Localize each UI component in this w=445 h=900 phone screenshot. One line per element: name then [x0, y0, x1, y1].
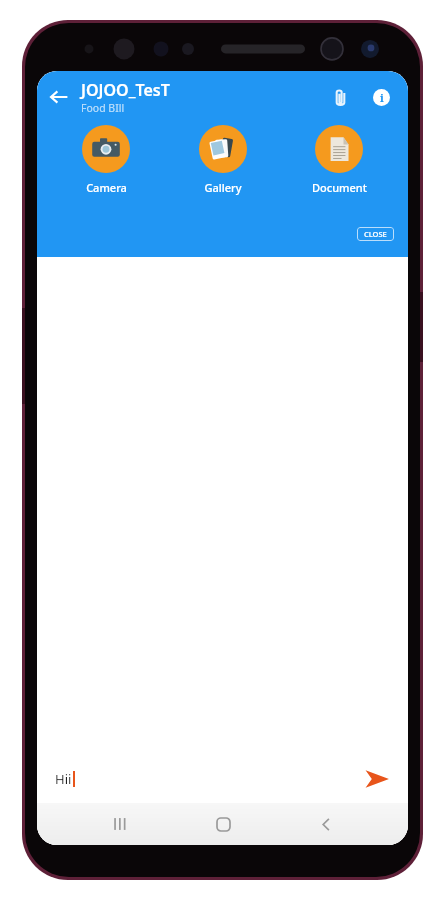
button[interactable]: Info — [360, 76, 402, 118]
staticText: Camera — [86, 180, 127, 195]
button[interactable]: Recent apps — [97, 803, 141, 845]
button[interactable]: Back — [304, 803, 348, 845]
button[interactable]: Document — [291, 123, 387, 195]
button[interactable]: CLOSE — [357, 227, 394, 241]
staticText: Food BIll — [81, 101, 125, 115]
button[interactable]: Gallery — [175, 123, 271, 195]
staticText: Gallery — [204, 180, 242, 195]
button[interactable]: Attach file — [320, 77, 360, 117]
button[interactable]: Hii — [55, 770, 354, 788]
button[interactable]: Back — [37, 75, 81, 119]
button[interactable]: Send — [354, 756, 400, 802]
staticText: CLOSE — [364, 229, 387, 239]
button[interactable]: Home — [201, 803, 245, 845]
button[interactable]: Camera — [58, 123, 154, 195]
staticText: Hii — [55, 770, 72, 788]
staticText: i — [380, 90, 384, 105]
staticText: Document — [312, 180, 367, 195]
staticText: JOJOO_TesT — [81, 79, 170, 101]
